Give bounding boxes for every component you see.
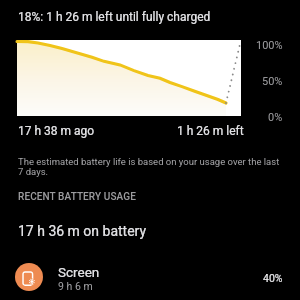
- staticText: Screen: [58, 264, 100, 280]
- staticText: 0%: [268, 111, 283, 124]
- staticText: 17 h 36 m on battery: [18, 223, 147, 239]
- staticText: 50%: [262, 75, 283, 88]
- staticText: 100%: [256, 39, 283, 52]
- staticText: 18%: 1 h 26 m left until fully charged: [18, 10, 211, 24]
- staticText: The estimated battery life is based on y…: [18, 156, 282, 178]
- staticText: 9 h 6 m: [58, 280, 93, 292]
- button[interactable]: Screen usage: [0, 253, 300, 300]
- staticText: RECENT BATTERY USAGE: [18, 191, 136, 203]
- staticText: 1 h 26 m left: [177, 124, 244, 138]
- staticText: 40%: [263, 272, 283, 284]
- other: Screen usage: [15, 263, 43, 291]
- staticText: 17 h 38 m ago: [18, 124, 95, 138]
